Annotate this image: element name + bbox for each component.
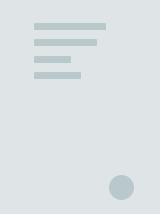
button[interactable]: Compose xyxy=(109,175,134,200)
